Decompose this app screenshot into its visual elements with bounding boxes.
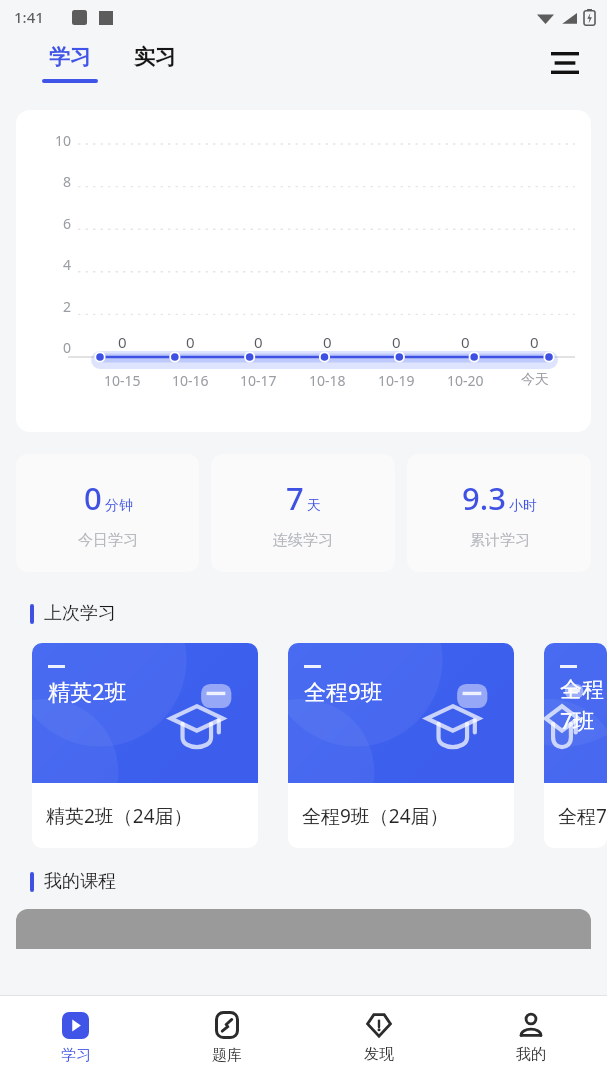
staticText: 0: [186, 332, 195, 352]
button[interactable]: 0: [16, 454, 199, 572]
staticText: 我的: [516, 1045, 546, 1064]
button[interactable]: 7: [211, 454, 395, 572]
staticText: 题库: [212, 1046, 242, 1065]
staticText: 0: [323, 332, 332, 352]
button[interactable]: 全程7班: [544, 643, 607, 848]
staticText: 小时: [509, 497, 537, 515]
staticText: 累计学习: [470, 531, 530, 550]
staticText: 发现: [364, 1045, 394, 1064]
staticText: 上次学习: [44, 602, 116, 625]
staticText: 4: [63, 255, 72, 274]
button[interactable]: 学习: [0, 996, 151, 1080]
staticText: 我的课程: [44, 870, 116, 893]
staticText: 全程7班: [560, 676, 607, 735]
staticText: 10-19: [378, 371, 415, 390]
button[interactable]: 题库: [151, 996, 303, 1080]
staticText: 0: [118, 332, 127, 352]
staticText: 7: [286, 477, 304, 519]
staticText: 学习: [49, 44, 91, 70]
staticText: 10-20: [447, 371, 484, 390]
staticText: 今天: [521, 371, 549, 389]
staticText: 实习: [134, 44, 176, 70]
staticText: 连续学习: [273, 531, 333, 550]
staticText: 精英2班（24届）: [46, 803, 193, 829]
staticText: 天: [307, 497, 321, 515]
button[interactable]: 实习: [134, 44, 176, 70]
staticText: 10: [55, 131, 72, 150]
staticText: 9.3: [462, 477, 506, 519]
staticText: 10-16: [172, 371, 209, 390]
staticText: 全程7班（24届）: [558, 803, 607, 829]
staticText: 10-15: [104, 371, 141, 390]
staticText: 今日学习: [78, 531, 138, 550]
button[interactable]: 发现: [303, 996, 455, 1080]
button[interactable]: 我的: [455, 996, 607, 1080]
button[interactable]: 学习: [42, 44, 98, 83]
staticText: 8: [63, 172, 72, 191]
button[interactable]: 9.3: [407, 454, 591, 572]
staticText: 学习: [61, 1046, 91, 1065]
button[interactable]: 全程9班: [288, 643, 514, 848]
button[interactable]: 10: [16, 110, 591, 432]
staticText: 分钟: [105, 497, 133, 515]
staticText: 全程9班（24届）: [302, 803, 449, 829]
staticText: 0: [530, 332, 539, 352]
staticText: 10-18: [309, 371, 346, 390]
staticText: 0: [254, 332, 263, 352]
staticText: 0: [84, 477, 102, 519]
staticText: 6: [63, 214, 72, 233]
staticText: 0: [63, 338, 72, 357]
staticText: 2: [63, 297, 72, 316]
staticText: 0: [392, 332, 401, 352]
button[interactable]: [16, 909, 591, 949]
staticText: 1:41: [14, 7, 44, 27]
button[interactable]: 精英2班: [32, 643, 258, 848]
staticText: 全程9班: [304, 676, 383, 706]
button[interactable]: Menu: [543, 41, 587, 85]
staticText: 10-17: [240, 371, 277, 390]
staticText: 0: [461, 332, 470, 352]
staticText: 精英2班: [48, 676, 127, 706]
